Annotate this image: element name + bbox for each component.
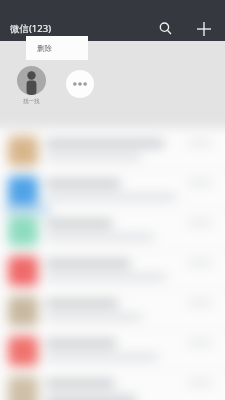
button[interactable]: 删除 [26, 36, 88, 60]
button[interactable]: Contact avatar [17, 66, 46, 95]
staticText: 删除 [37, 44, 52, 53]
button[interactable]: More options [66, 70, 94, 98]
staticText: 找一找 [23, 98, 40, 105]
staticText: 微信(123) [10, 22, 52, 35]
button[interactable]: Add [191, 16, 216, 41]
button[interactable]: Search [153, 16, 178, 41]
